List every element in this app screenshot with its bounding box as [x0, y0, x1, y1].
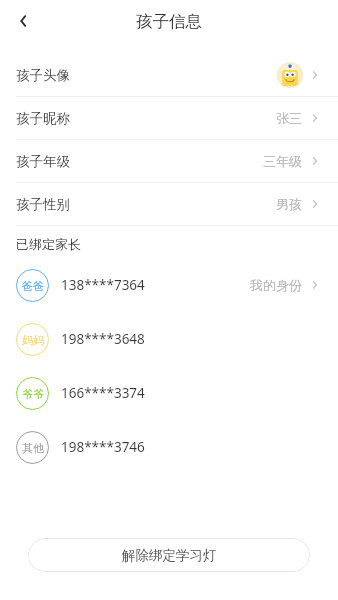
- staticText: 孩子性别: [16, 196, 70, 213]
- button[interactable]: 爸爸: [0, 258, 338, 312]
- staticText: 已绑定家长: [16, 236, 81, 252]
- staticText: 138****7364: [61, 276, 145, 294]
- button[interactable]: Back: [6, 4, 40, 38]
- button[interactable]: 解除绑定学习灯: [28, 538, 310, 572]
- staticText: 解除绑定学习灯: [122, 547, 217, 564]
- staticText: 198****3746: [61, 438, 145, 456]
- staticText: 孩子年级: [16, 153, 70, 170]
- button[interactable]: 爷爷: [0, 366, 338, 420]
- staticText: 我的身份: [250, 277, 302, 293]
- button[interactable]: 孩子年级: [0, 140, 338, 182]
- staticText: 其他: [22, 441, 44, 455]
- staticText: 198****3648: [61, 330, 145, 348]
- staticText: 166****3374: [61, 384, 145, 402]
- button[interactable]: 孩子性别: [0, 183, 338, 225]
- button[interactable]: 其他: [0, 420, 338, 474]
- button[interactable]: 妈妈: [0, 312, 338, 366]
- staticText: 孩子信息: [136, 11, 202, 32]
- button[interactable]: 孩子头像: [0, 54, 338, 96]
- staticText: 三年级: [263, 153, 302, 169]
- staticText: 妈妈: [22, 333, 44, 347]
- staticText: 爸爸: [22, 279, 44, 293]
- staticText: 男孩: [276, 196, 302, 212]
- staticText: 孩子昵称: [16, 110, 70, 127]
- staticText: 张三: [276, 110, 302, 126]
- staticText: 爷爷: [22, 387, 44, 401]
- staticText: 孩子头像: [16, 67, 70, 84]
- button[interactable]: 孩子昵称: [0, 97, 338, 139]
